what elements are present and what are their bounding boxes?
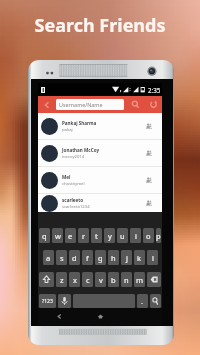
staticText: b bbox=[111, 275, 116, 285]
button[interactable]: k bbox=[134, 250, 145, 265]
button[interactable]: . bbox=[137, 294, 148, 308]
staticText: k bbox=[137, 253, 142, 263]
staticText: o bbox=[146, 231, 151, 241]
button[interactable]: Pankaj Sharma bbox=[38, 113, 162, 139]
button[interactable]: v bbox=[95, 272, 106, 287]
button[interactable]: Mel bbox=[38, 167, 162, 193]
button[interactable]: Search bbox=[150, 294, 161, 308]
staticText: c bbox=[86, 275, 90, 285]
button[interactable]: u bbox=[117, 228, 128, 243]
staticText: l bbox=[152, 253, 154, 263]
button[interactable]: ?123 bbox=[39, 294, 56, 308]
button[interactable]: o bbox=[143, 228, 154, 243]
staticText: t bbox=[95, 231, 98, 241]
button[interactable]: x bbox=[69, 272, 80, 287]
staticText: r bbox=[82, 231, 86, 241]
button[interactable]: d bbox=[69, 250, 80, 265]
staticText: scarleeto1234 bbox=[62, 204, 90, 210]
button[interactable]: s bbox=[56, 250, 67, 265]
button[interactable]: j bbox=[121, 250, 132, 265]
staticText: u bbox=[120, 231, 125, 241]
button[interactable]: a bbox=[43, 250, 54, 265]
staticText: x bbox=[73, 275, 77, 285]
button[interactable]: Refresh bbox=[144, 96, 162, 113]
button[interactable]: Add friend bbox=[140, 167, 157, 193]
button[interactable]: m bbox=[134, 272, 145, 287]
staticText: Username/Name bbox=[59, 101, 103, 108]
staticText: w bbox=[55, 231, 61, 241]
staticText: chastitymel bbox=[62, 181, 85, 187]
staticText: p bbox=[156, 231, 161, 241]
staticText: s bbox=[60, 253, 64, 263]
button[interactable]: r bbox=[78, 228, 89, 243]
staticText: scarleeto bbox=[62, 197, 84, 203]
staticText: q bbox=[42, 231, 47, 241]
staticText: Pankaj Sharma bbox=[62, 120, 97, 126]
button[interactable]: Add friend bbox=[140, 194, 157, 212]
staticText: n bbox=[124, 275, 129, 285]
staticText: h bbox=[111, 253, 116, 263]
button[interactable]: i bbox=[130, 228, 141, 243]
button[interactable]: p bbox=[156, 228, 161, 243]
staticText: Jonathan McCoy bbox=[62, 147, 100, 153]
staticText: a bbox=[46, 253, 51, 263]
button[interactable]: Add friend bbox=[140, 113, 157, 139]
staticText: g bbox=[98, 253, 103, 263]
staticText: i bbox=[135, 231, 137, 241]
button[interactable]: b bbox=[108, 272, 119, 287]
button[interactable]: l bbox=[147, 250, 158, 265]
button[interactable]: Search bbox=[126, 96, 144, 113]
button[interactable]: y bbox=[104, 228, 115, 243]
button[interactable]: Voice input bbox=[58, 294, 71, 308]
button[interactable]: Back bbox=[38, 96, 56, 113]
staticText: Mel bbox=[62, 174, 71, 180]
button[interactable]: f bbox=[82, 250, 93, 265]
button[interactable]: scarleeto bbox=[38, 194, 162, 212]
button[interactable]: Back bbox=[38, 308, 80, 325]
button[interactable]: Jonathan McCoy bbox=[38, 140, 162, 166]
staticText: d bbox=[72, 253, 77, 263]
button[interactable]: c bbox=[82, 272, 93, 287]
staticText: ?123 bbox=[42, 298, 53, 305]
staticText: e bbox=[68, 231, 73, 241]
staticText: mccoy2014 bbox=[62, 154, 85, 160]
staticText: . bbox=[141, 296, 144, 306]
staticText: m bbox=[136, 275, 144, 285]
staticText: y bbox=[108, 231, 112, 241]
button[interactable]: n bbox=[121, 272, 132, 287]
button[interactable]: Backspace bbox=[147, 272, 161, 287]
button[interactable]: w bbox=[52, 228, 63, 243]
staticText: pakaj bbox=[62, 127, 73, 133]
staticText: v bbox=[99, 275, 103, 285]
button[interactable]: q bbox=[39, 228, 50, 243]
button[interactable]: Username/Name bbox=[56, 99, 124, 110]
staticText: z bbox=[60, 275, 64, 285]
button[interactable]: Add friend bbox=[140, 140, 157, 166]
staticText: 2:35 bbox=[148, 86, 161, 94]
staticText: f bbox=[86, 253, 89, 263]
button[interactable]: g bbox=[95, 250, 106, 265]
button[interactable]: h bbox=[108, 250, 119, 265]
staticText: j bbox=[126, 253, 128, 263]
staticText: Search Friends bbox=[0, 13, 200, 38]
button[interactable]: Home bbox=[80, 308, 121, 325]
button[interactable]: z bbox=[56, 272, 67, 287]
button[interactable]: e bbox=[65, 228, 76, 243]
button[interactable]: Shift bbox=[39, 272, 54, 287]
button[interactable]: t bbox=[91, 228, 102, 243]
